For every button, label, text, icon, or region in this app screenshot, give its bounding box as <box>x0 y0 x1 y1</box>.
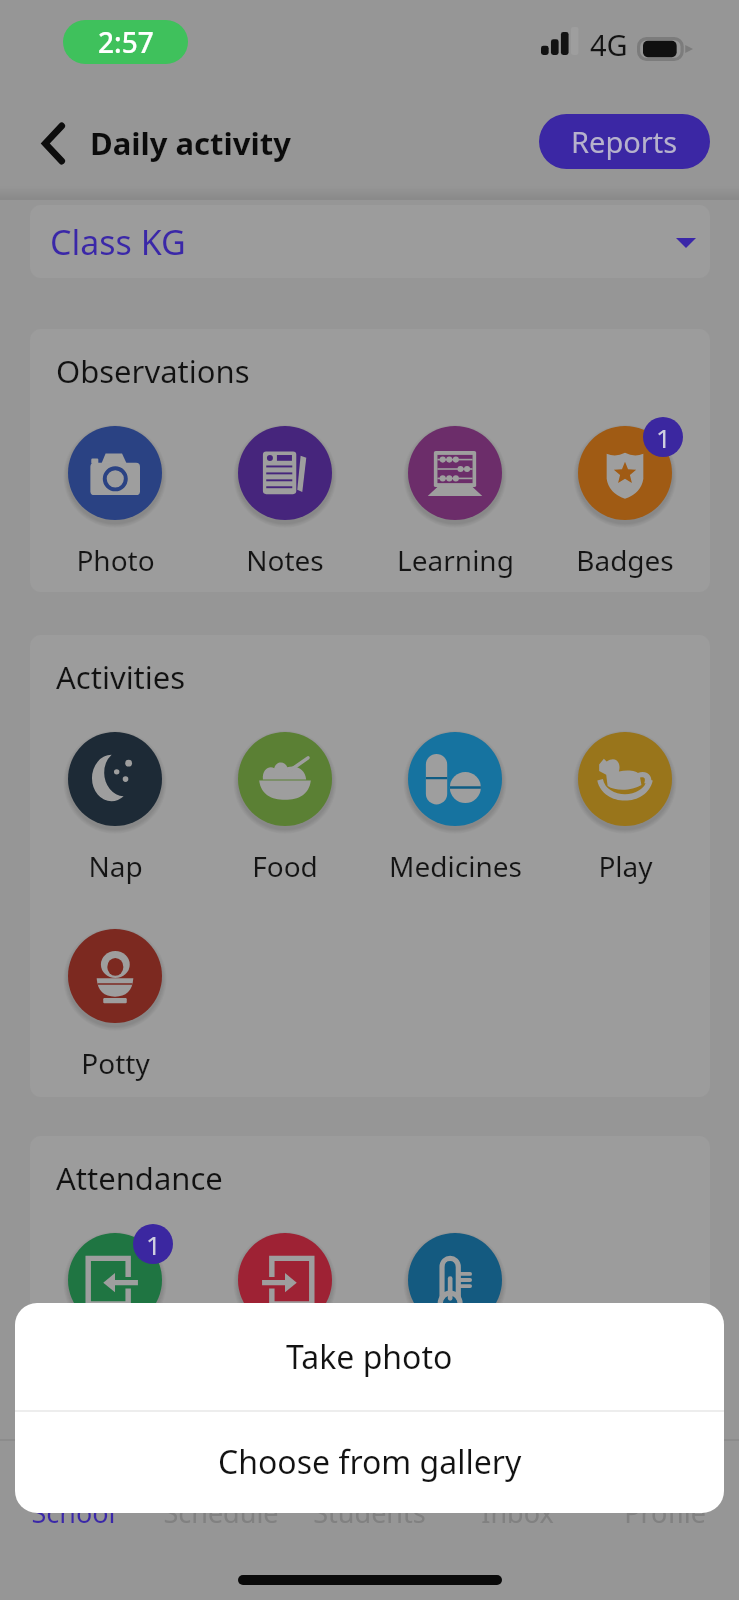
staticText: Schedule <box>163 1494 279 1531</box>
button[interactable]: Profile <box>591 1441 739 1551</box>
staticText: Profile <box>624 1494 706 1531</box>
button[interactable]: Students <box>295 1441 443 1551</box>
staticText: Badges <box>576 541 674 579</box>
staticText: Daily activity <box>90 122 291 164</box>
staticText: Play <box>598 847 653 885</box>
staticText: 1 <box>146 1227 161 1262</box>
staticText: Medicines <box>389 847 522 885</box>
staticText: 1 <box>656 420 671 455</box>
staticText: Take photo <box>286 1335 453 1379</box>
staticText: 2:57 <box>98 23 154 61</box>
staticText: Observations <box>56 350 250 392</box>
button[interactable]: Choose from gallery <box>15 1412 724 1512</box>
button[interactable]: Learning <box>370 426 540 579</box>
button[interactable]: Potty <box>30 929 200 1082</box>
button[interactable]: School <box>0 1441 147 1551</box>
button[interactable]: Play <box>540 732 710 885</box>
staticText: Food <box>252 847 318 885</box>
button[interactable]: Food <box>200 732 370 885</box>
staticText: Students <box>313 1494 426 1531</box>
staticText: Nap <box>88 847 143 885</box>
button[interactable]: Photo <box>30 426 200 579</box>
button[interactable]: Class KG <box>30 205 710 278</box>
staticText: School <box>31 1494 116 1531</box>
staticText: 4G <box>590 25 628 64</box>
button[interactable]: Temperature <box>370 1233 540 1386</box>
staticText: Learning <box>397 541 514 579</box>
staticText: Class KG <box>50 219 186 265</box>
staticText: Temperature <box>370 1348 540 1386</box>
staticText: Choose from gallery <box>218 1440 522 1484</box>
staticText: Notes <box>246 541 324 579</box>
button[interactable]: Notes <box>200 426 370 579</box>
button[interactable]: Inbox <box>443 1441 591 1551</box>
button[interactable]: 1 <box>540 426 710 579</box>
button[interactable]: Nap <box>30 732 200 885</box>
button[interactable]: Schedule <box>147 1441 295 1551</box>
staticText: Photo <box>76 541 155 579</box>
staticText: Inbox <box>481 1494 554 1531</box>
staticText: Check out <box>220 1348 351 1386</box>
staticText: Potty <box>81 1044 150 1082</box>
staticText: Activities <box>56 656 186 698</box>
staticText: Attendance <box>56 1157 223 1199</box>
button[interactable]: 1 <box>30 1233 200 1386</box>
button[interactable]: Reports <box>539 114 710 169</box>
staticText: Reports <box>571 122 678 161</box>
button[interactable]: Medicines <box>370 732 540 885</box>
button[interactable]: Check out <box>200 1233 370 1386</box>
button[interactable]: Back <box>28 118 78 168</box>
button[interactable]: Take photo <box>15 1303 724 1410</box>
